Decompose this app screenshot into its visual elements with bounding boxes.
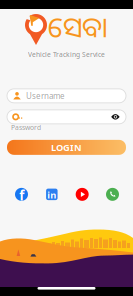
button[interactable]: LOGIN xyxy=(7,140,126,155)
staticText: LOGIN xyxy=(51,141,82,154)
button[interactable]: Username xyxy=(7,89,126,103)
staticText: Vehicle Tracking Service xyxy=(28,50,105,59)
button[interactable]: WhatsApp xyxy=(106,188,119,201)
button[interactable]: LinkedIn xyxy=(45,188,58,201)
staticText: ସେବା xyxy=(48,7,108,45)
button[interactable] xyxy=(7,110,126,124)
staticText: f xyxy=(19,186,24,204)
button[interactable]: YouTube xyxy=(76,188,89,201)
staticText: Username xyxy=(26,90,65,101)
button[interactable]: Facebook xyxy=(15,188,28,201)
staticText: in xyxy=(47,189,56,201)
staticText: Password xyxy=(11,123,41,132)
